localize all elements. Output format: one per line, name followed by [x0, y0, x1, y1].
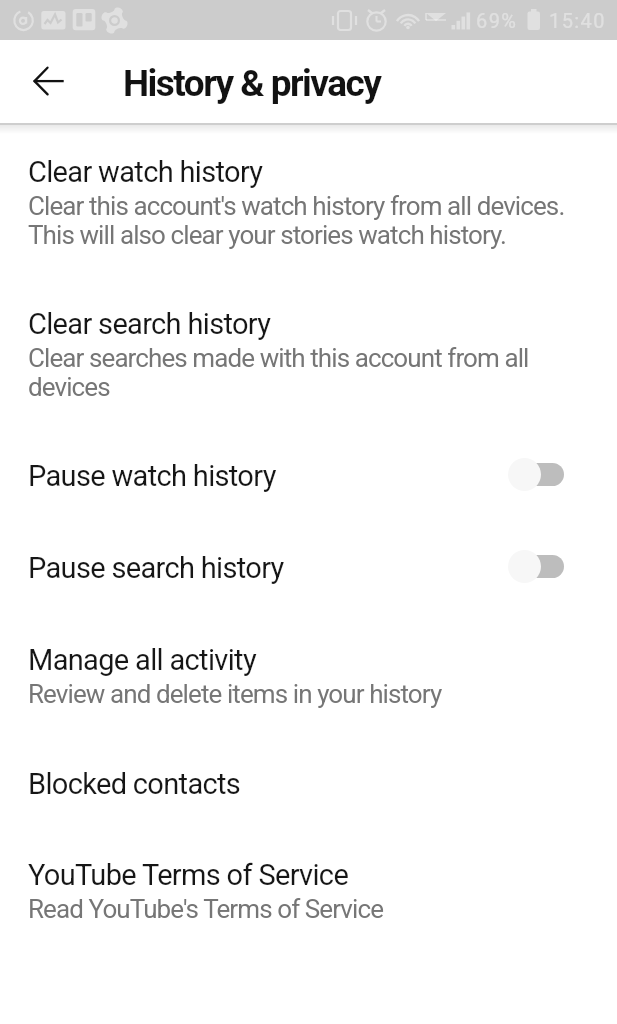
button[interactable]: Pause watch history — [0, 437, 617, 510]
button[interactable]: Navigate up — [7, 43, 63, 99]
staticText: Pause watch history — [28, 459, 276, 493]
button[interactable]: Blocked contacts — [0, 767, 617, 801]
staticText: Clear this account's watch history from … — [28, 191, 565, 250]
staticText: Clear search history — [28, 307, 271, 341]
staticText: Pause search history — [28, 551, 284, 585]
button[interactable]: YouTube Terms of Service — [0, 858, 617, 922]
staticText: 69% — [476, 9, 518, 32]
staticText: Clear watch history — [28, 155, 263, 189]
button[interactable]: Clear watch history — [0, 155, 617, 248]
staticText: Review and delete items in your history — [28, 679, 442, 709]
staticText: YouTube Terms of Service — [28, 858, 349, 892]
staticText: Clear searches made with this account fr… — [28, 343, 529, 402]
staticText: Read YouTube's Terms of Service — [28, 894, 384, 924]
button[interactable]: Manage all activity — [0, 643, 617, 707]
staticText: Manage all activity — [28, 643, 256, 677]
staticText: Blocked contacts — [28, 767, 241, 801]
button[interactable]: Clear search history — [0, 307, 617, 400]
staticText: 15:40 — [549, 9, 606, 32]
button[interactable]: Pause search history — [0, 529, 617, 602]
staticText: History & privacy — [123, 62, 381, 105]
